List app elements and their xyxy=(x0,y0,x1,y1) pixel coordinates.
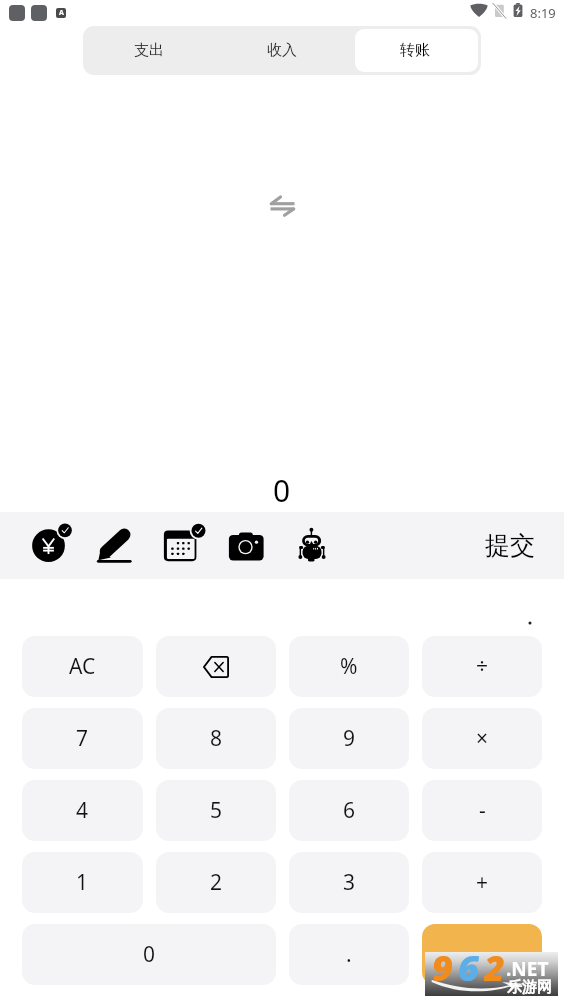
button[interactable]: - xyxy=(422,780,542,841)
button[interactable]: Date xyxy=(160,520,208,564)
button[interactable]: + xyxy=(422,852,542,913)
button[interactable] xyxy=(156,636,276,697)
staticText: 3 xyxy=(343,868,356,897)
staticText: 收入 xyxy=(267,41,297,60)
staticText: 2 xyxy=(210,868,223,897)
button[interactable]: 2 xyxy=(156,852,276,913)
button[interactable]: . xyxy=(289,924,409,985)
button[interactable]: Category xyxy=(28,519,72,563)
button[interactable]: Note xyxy=(93,526,133,564)
button[interactable]: 5 xyxy=(156,780,276,841)
button[interactable]: 8 xyxy=(156,708,276,769)
staticText: 1 xyxy=(76,868,89,897)
button[interactable]: ÷ xyxy=(422,636,542,697)
button[interactable]: 3 xyxy=(289,852,409,913)
staticText: 4 xyxy=(76,796,89,825)
button[interactable]: 9 xyxy=(289,708,409,769)
staticText: .NET xyxy=(506,956,549,982)
staticText: 0 xyxy=(143,940,156,969)
staticText: 6 xyxy=(343,796,356,825)
staticText: 9 xyxy=(343,724,356,753)
button[interactable]: 提交 xyxy=(478,524,542,566)
button[interactable]: × xyxy=(422,708,542,769)
button[interactable] xyxy=(422,924,542,985)
staticText: . xyxy=(346,940,352,969)
staticText: 转账 xyxy=(400,41,430,60)
staticText: + xyxy=(476,868,489,897)
staticText: 提交 xyxy=(485,530,535,561)
button[interactable]: 4 xyxy=(22,780,143,841)
staticText: 2 xyxy=(484,943,510,987)
staticText: 乐游网 xyxy=(507,978,552,997)
staticText: 6 xyxy=(458,943,484,987)
button[interactable]: Camera xyxy=(227,530,265,560)
staticText: AC xyxy=(69,652,96,681)
button[interactable]: 6 xyxy=(289,780,409,841)
staticText: 8 xyxy=(210,724,223,753)
staticText: % xyxy=(340,652,358,681)
button[interactable]: 7 xyxy=(22,708,143,769)
button[interactable]: 1 xyxy=(22,852,143,913)
button[interactable]: 0 xyxy=(22,924,276,985)
staticText: 7 xyxy=(76,724,89,753)
staticText: - xyxy=(479,796,486,825)
staticText: × xyxy=(476,724,489,753)
button[interactable]: Assistant xyxy=(299,526,325,562)
staticText: 0 xyxy=(273,470,291,511)
staticText: 5 xyxy=(210,796,223,825)
button[interactable]: 转账 xyxy=(349,26,481,75)
staticText: ÷ xyxy=(476,652,489,681)
button[interactable]: AC xyxy=(22,636,143,697)
staticText: 支出 xyxy=(134,41,164,60)
staticText: 8:19 xyxy=(530,4,556,22)
staticText: A xyxy=(59,8,64,18)
button[interactable]: 收入 xyxy=(216,26,348,75)
button[interactable]: % xyxy=(289,636,409,697)
button[interactable]: 支出 xyxy=(83,26,215,75)
staticText: 9 xyxy=(432,943,458,987)
